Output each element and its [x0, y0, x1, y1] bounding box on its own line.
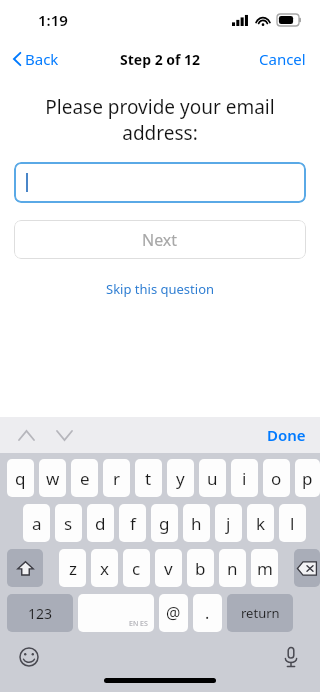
staticText: g — [159, 512, 170, 535]
staticText: q — [15, 467, 26, 490]
staticText: @ — [166, 602, 181, 624]
button[interactable]: k — [247, 504, 274, 542]
button[interactable]: l — [279, 504, 306, 542]
button[interactable]: a — [23, 504, 50, 542]
staticText: l — [290, 512, 295, 535]
button[interactable]: Dictation — [276, 642, 306, 672]
button[interactable]: . — [193, 594, 222, 632]
staticText: x — [100, 557, 109, 580]
button[interactable]: o — [263, 459, 290, 497]
staticText: w — [46, 467, 60, 490]
button[interactable]: Back — [0, 43, 69, 75]
button[interactable]: x — [91, 549, 118, 587]
staticText: e — [80, 467, 90, 490]
staticText: c — [132, 557, 141, 580]
staticText: . — [205, 602, 210, 624]
staticText: y — [176, 467, 185, 490]
staticText: f — [130, 512, 136, 535]
staticText: v — [164, 557, 173, 580]
staticText: m — [257, 557, 273, 580]
button[interactable]: Previous field — [10, 419, 42, 451]
staticText: d — [95, 512, 106, 535]
staticText: u — [207, 467, 218, 490]
button[interactable]: j — [215, 504, 242, 542]
button[interactable]: Done — [253, 419, 320, 451]
staticText: r — [113, 467, 121, 490]
staticText: Step 2 of 12 — [120, 50, 201, 69]
staticText: 123 — [28, 604, 53, 623]
staticText: Next — [142, 229, 178, 251]
button[interactable]: 123 — [7, 594, 73, 632]
staticText: n — [227, 557, 238, 580]
button[interactable]: return — [227, 594, 293, 632]
button[interactable]: t — [135, 459, 162, 497]
staticText: return — [241, 604, 280, 622]
button[interactable]: h — [183, 504, 210, 542]
button[interactable]: p — [295, 459, 320, 497]
staticText: i — [242, 467, 247, 490]
staticText: 1:19 — [38, 10, 68, 30]
staticText: o — [271, 467, 282, 490]
button[interactable]: m — [251, 549, 278, 587]
button[interactable]: r — [103, 459, 130, 497]
button[interactable]: e — [71, 459, 98, 497]
staticText: j — [226, 512, 231, 535]
button[interactable]: Next field — [48, 419, 80, 451]
staticText: t — [145, 467, 152, 490]
button[interactable]: c — [123, 549, 150, 587]
button[interactable]: Skip this question — [94, 276, 227, 302]
staticText: b — [195, 557, 206, 580]
button[interactable]: b — [187, 549, 214, 587]
button[interactable]: v — [155, 549, 182, 587]
staticText: h — [191, 512, 202, 535]
button[interactable]: Next — [14, 220, 306, 259]
button[interactable]: Cancel — [245, 43, 320, 75]
staticText: s — [64, 512, 73, 535]
staticText: Skip this question — [106, 280, 215, 298]
staticText: Cancel — [259, 49, 306, 69]
button[interactable]: w — [39, 459, 66, 497]
button[interactable]: Emoji — [14, 642, 44, 672]
staticText: Back — [25, 49, 59, 69]
staticText: z — [69, 557, 77, 580]
button[interactable]: z — [59, 549, 86, 587]
staticText: k — [256, 512, 266, 535]
button[interactable]: n — [219, 549, 246, 587]
button[interactable]: Space — [78, 594, 154, 632]
staticText: a — [32, 512, 42, 535]
staticText: Done — [267, 425, 306, 445]
button[interactable]: q — [7, 459, 34, 497]
staticText: p — [302, 467, 313, 490]
button[interactable]: s — [55, 504, 82, 542]
staticText: EN ES — [129, 619, 148, 629]
button[interactable]: Backspace — [294, 549, 320, 587]
button[interactable]: d — [87, 504, 114, 542]
button[interactable]: Shift — [7, 549, 43, 587]
button[interactable]: y — [167, 459, 194, 497]
button[interactable]: i — [231, 459, 258, 497]
button[interactable]: f — [119, 504, 146, 542]
button[interactable] — [14, 162, 306, 203]
staticText: Please provide your email address: — [16, 94, 304, 145]
button[interactable]: g — [151, 504, 178, 542]
button[interactable]: @ — [159, 594, 188, 632]
button[interactable]: u — [199, 459, 226, 497]
